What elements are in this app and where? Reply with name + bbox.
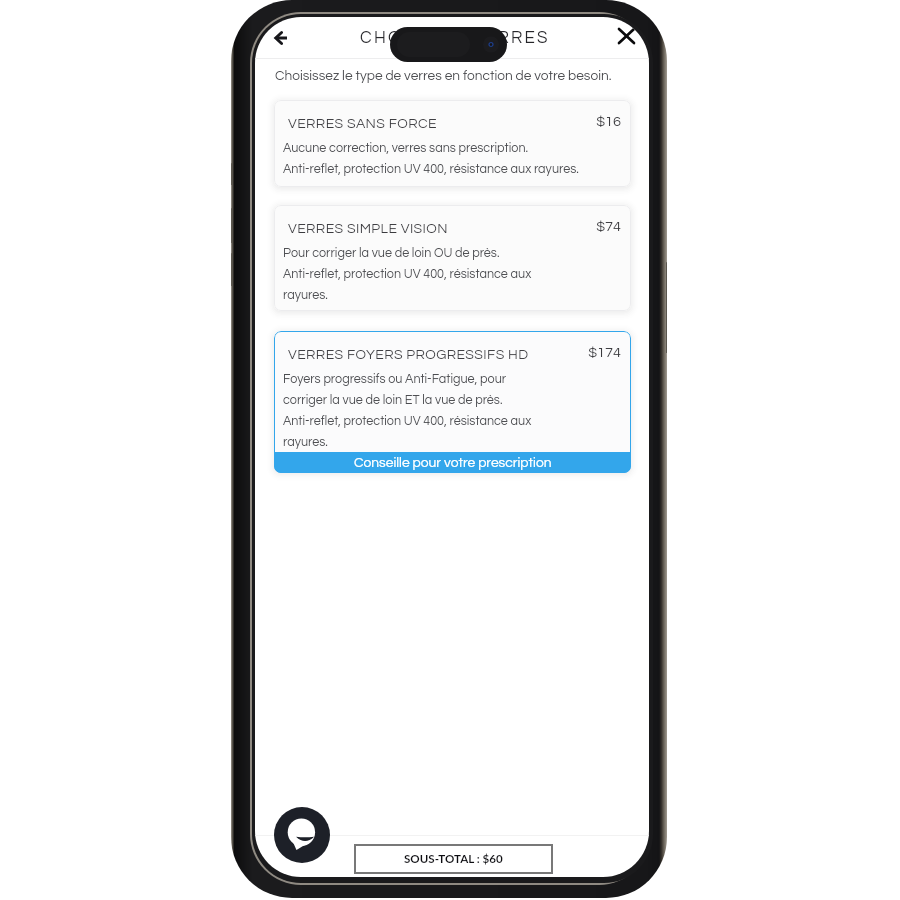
staticText: Conseille pour votre prescription (354, 456, 552, 470)
staticText: Choisissez le type de verres en fonction… (275, 69, 612, 83)
button[interactable]: VERRES SIMPLE VISION (274, 205, 631, 311)
staticText: Pour corriger la vue de loin OU de près. (283, 247, 500, 260)
button[interactable]: Chat (274, 807, 330, 863)
staticText: Anti-reflet, protection UV 400, résistan… (283, 415, 532, 428)
staticText: VERRES SIMPLE VISION (288, 222, 448, 236)
button[interactable]: SOUS-TOTAL : $60 (354, 844, 553, 874)
staticText: $16 (577, 114, 621, 129)
staticText: SOUS-TOTAL : $60 (404, 852, 503, 866)
staticText: rayures. (283, 289, 328, 302)
staticText: Anti-reflet, protection UV 400, résistan… (283, 163, 579, 176)
button[interactable]: VERRES SANS FORCE (274, 100, 631, 187)
staticText: Aucune correction, verres sans prescript… (283, 142, 529, 155)
staticText: $74 (577, 219, 621, 234)
button[interactable]: VERRES FOYERS PROGRESSIFS HD (274, 331, 631, 473)
staticText: VERRES SANS FORCE (288, 117, 437, 131)
staticText: $174 (577, 345, 621, 360)
staticText: Foyers progressifs ou Anti-Fatigue, pour (283, 373, 507, 386)
staticText: corriger la vue de loin ET la vue de prè… (283, 394, 503, 407)
staticText: VERRES FOYERS PROGRESSIFS HD (288, 348, 529, 362)
button[interactable]: Close (608, 18, 644, 54)
staticText: rayures. (283, 436, 328, 449)
staticText: CHOIX DES VERRES (360, 29, 550, 47)
staticText: Anti-reflet, protection UV 400, résistan… (283, 268, 532, 281)
button[interactable]: Back (263, 20, 299, 56)
